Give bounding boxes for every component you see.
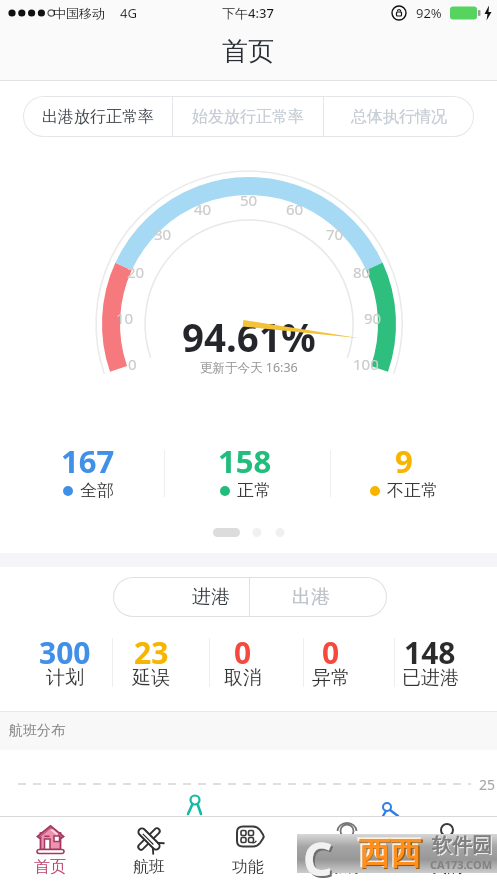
staticText: 首页: [34, 857, 66, 877]
staticText: 50: [240, 190, 258, 210]
staticText: 出港放行正常率: [42, 107, 154, 127]
staticText: C: [305, 829, 335, 879]
staticText: 计划: [46, 666, 84, 690]
staticText: 23: [134, 632, 169, 666]
staticText: 始发放行正常率: [192, 107, 304, 127]
staticText: 158: [218, 440, 272, 482]
staticText: 西西: [359, 834, 421, 873]
staticText: 0: [322, 632, 340, 666]
staticText: 下午4:37: [222, 4, 274, 22]
button[interactable]: 始发放行正常率: [173, 96, 323, 137]
staticText: 正常: [237, 480, 271, 501]
staticText: 167: [61, 440, 115, 482]
staticText: 总体执行情况: [351, 107, 447, 127]
staticText: 功能: [232, 857, 264, 877]
staticText: 出港: [292, 585, 330, 609]
staticText: 70: [326, 224, 344, 244]
button[interactable]: 航班: [99, 817, 198, 883]
staticText: C: [303, 827, 333, 877]
staticText: 异常: [312, 666, 350, 690]
button[interactable]: 167: [6, 440, 170, 505]
staticText: 60: [286, 199, 304, 219]
button[interactable]: 出港放行正常率: [23, 96, 172, 137]
staticText: 航班: [133, 857, 165, 877]
button[interactable]: 我的: [396, 817, 497, 883]
staticText: 0: [234, 632, 252, 666]
staticText: 服务: [331, 857, 363, 877]
staticText: 148: [404, 632, 456, 666]
button[interactable]: 0: [198, 632, 288, 692]
button[interactable]: 148: [385, 632, 475, 692]
staticText: 全部: [80, 480, 114, 501]
staticText: 92%: [416, 4, 442, 22]
button[interactable]: 总体执行情况: [324, 96, 474, 137]
button[interactable]: 首页: [0, 817, 99, 883]
staticText: 不正常: [387, 480, 438, 501]
staticText: 0: [128, 354, 137, 374]
staticText: 中国移动: [53, 5, 105, 21]
staticText: 90: [364, 308, 382, 328]
staticText: 软件园: [432, 833, 492, 858]
button[interactable]: 9: [322, 440, 486, 505]
button[interactable]: 0: [286, 632, 376, 692]
staticText: 西西: [359, 834, 423, 874]
staticText: 延误: [132, 666, 170, 690]
staticText: 25: [479, 775, 496, 794]
staticText: 10: [116, 308, 134, 328]
staticText: 我的: [431, 857, 463, 877]
staticText: CA173.COM: [430, 857, 493, 872]
staticText: 航班分布: [9, 722, 65, 740]
staticText: 30: [154, 224, 172, 244]
staticText: 西西: [357, 832, 421, 872]
staticText: 40: [194, 199, 212, 219]
button[interactable]: 服务: [297, 817, 396, 883]
button[interactable]: 158: [163, 440, 327, 505]
staticText: 4G: [120, 4, 137, 22]
staticText: 首页: [222, 35, 274, 68]
staticText: 9: [395, 440, 413, 482]
button[interactable]: 功能: [198, 817, 297, 883]
button[interactable]: [250, 577, 387, 617]
staticText: 进港: [192, 585, 230, 609]
button[interactable]: [113, 577, 249, 617]
staticText: 94.61%: [182, 311, 316, 361]
staticText: 300: [39, 632, 91, 666]
staticText: 100: [353, 354, 379, 374]
staticText: 20: [127, 262, 145, 282]
staticText: 取消: [224, 666, 262, 690]
staticText: 更新于今天 16:36: [200, 359, 298, 376]
staticText: 已进港: [402, 666, 459, 690]
button[interactable]: 23: [106, 632, 196, 692]
staticText: 软件园: [433, 834, 493, 859]
button[interactable]: 300: [20, 632, 110, 692]
staticText: 80: [353, 262, 371, 282]
